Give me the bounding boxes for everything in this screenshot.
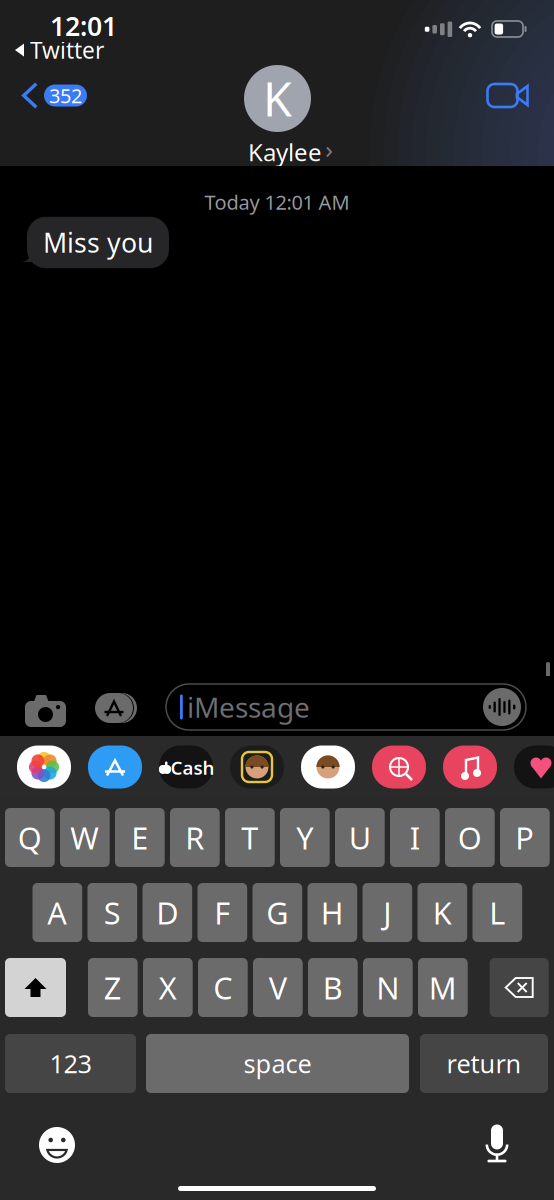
staticText: E (131, 817, 148, 858)
button[interactable]: K (417, 883, 467, 942)
staticText: F (214, 892, 230, 933)
button[interactable]: FaceTime (482, 84, 523, 107)
button[interactable]: G (252, 883, 302, 942)
staticText: 12:01 (50, 8, 117, 43)
button[interactable]: X (143, 958, 193, 1017)
staticText: Q (18, 817, 42, 858)
button[interactable] (17, 745, 71, 788)
staticText: Today 12:01 AM (204, 189, 349, 215)
button[interactable]: iMessage (166, 684, 526, 730)
staticText: Y (296, 817, 313, 858)
button[interactable]: U (335, 808, 385, 867)
button[interactable]: W (60, 808, 110, 867)
staticText: H (321, 892, 344, 933)
staticText: X (159, 967, 177, 1008)
staticText: Miss you (43, 225, 153, 260)
button[interactable]: V (253, 958, 303, 1017)
button[interactable]: L (472, 883, 522, 942)
button[interactable]: M (418, 958, 468, 1017)
staticText: L (489, 892, 505, 933)
staticText: P (515, 817, 534, 858)
staticText: 352 (49, 82, 82, 109)
staticText: M (429, 967, 457, 1008)
button[interactable]: O (445, 808, 495, 867)
staticText: W (70, 817, 99, 858)
button[interactable]: J (362, 883, 412, 942)
staticText: V (269, 967, 287, 1008)
button[interactable]: Twitter (15, 35, 104, 65)
button[interactable] (88, 745, 142, 788)
staticText: J (383, 892, 391, 933)
button[interactable]: space (146, 1034, 409, 1093)
button[interactable]: Delete (490, 958, 549, 1017)
button[interactable] (443, 745, 497, 788)
button[interactable]: Emoji (39, 1127, 75, 1163)
staticText: return (446, 1047, 521, 1080)
staticText: U (349, 817, 371, 858)
staticText: N (376, 967, 399, 1008)
staticText: R (185, 817, 204, 858)
button[interactable]: Camera (25, 692, 66, 724)
button[interactable]: R (170, 808, 220, 867)
button[interactable]: P (500, 808, 550, 867)
staticText: C (213, 967, 232, 1008)
button[interactable] (301, 745, 355, 788)
button[interactable]: Z (88, 958, 138, 1017)
button[interactable] (372, 745, 426, 788)
staticText: D (156, 892, 178, 933)
button[interactable]: B (308, 958, 358, 1017)
button[interactable]: Apps (93, 692, 135, 724)
button[interactable]: Q (5, 808, 55, 867)
staticText: O (458, 817, 482, 858)
button[interactable]: N (363, 958, 413, 1017)
button[interactable] (230, 745, 284, 788)
button[interactable]: F (197, 883, 247, 942)
button[interactable]: I (390, 808, 440, 867)
button[interactable]: S (87, 883, 137, 942)
staticText: space (243, 1047, 311, 1080)
button[interactable]: Y (280, 808, 330, 867)
button[interactable]: 123 (5, 1034, 136, 1093)
button[interactable]: return (420, 1034, 548, 1093)
staticText: K (433, 892, 452, 933)
staticText: iMessage (187, 688, 310, 726)
staticText: T (241, 817, 258, 858)
staticText: K (263, 67, 292, 129)
button[interactable]: 352 (22, 82, 87, 109)
staticText: A (47, 892, 67, 933)
staticText: Z (104, 967, 122, 1008)
button[interactable]: Cash (159, 745, 213, 788)
button[interactable]: H (307, 883, 357, 942)
button[interactable]: T (225, 808, 275, 867)
staticText: Kaylee (248, 136, 322, 168)
staticText: G (266, 892, 288, 933)
button[interactable]: C (198, 958, 248, 1017)
button[interactable]: D (142, 883, 192, 942)
button[interactable]: Shift (5, 958, 66, 1017)
staticText: 123 (49, 1047, 91, 1080)
staticText: B (323, 967, 343, 1008)
button[interactable]: Dictation (484, 1124, 510, 1164)
staticText: Cash (170, 755, 214, 780)
button[interactable]: A (32, 883, 82, 942)
staticText: Twitter (30, 35, 104, 65)
button[interactable] (514, 745, 554, 788)
staticText: I (410, 817, 420, 858)
button[interactable]: E (115, 808, 165, 867)
staticText: S (104, 892, 121, 933)
